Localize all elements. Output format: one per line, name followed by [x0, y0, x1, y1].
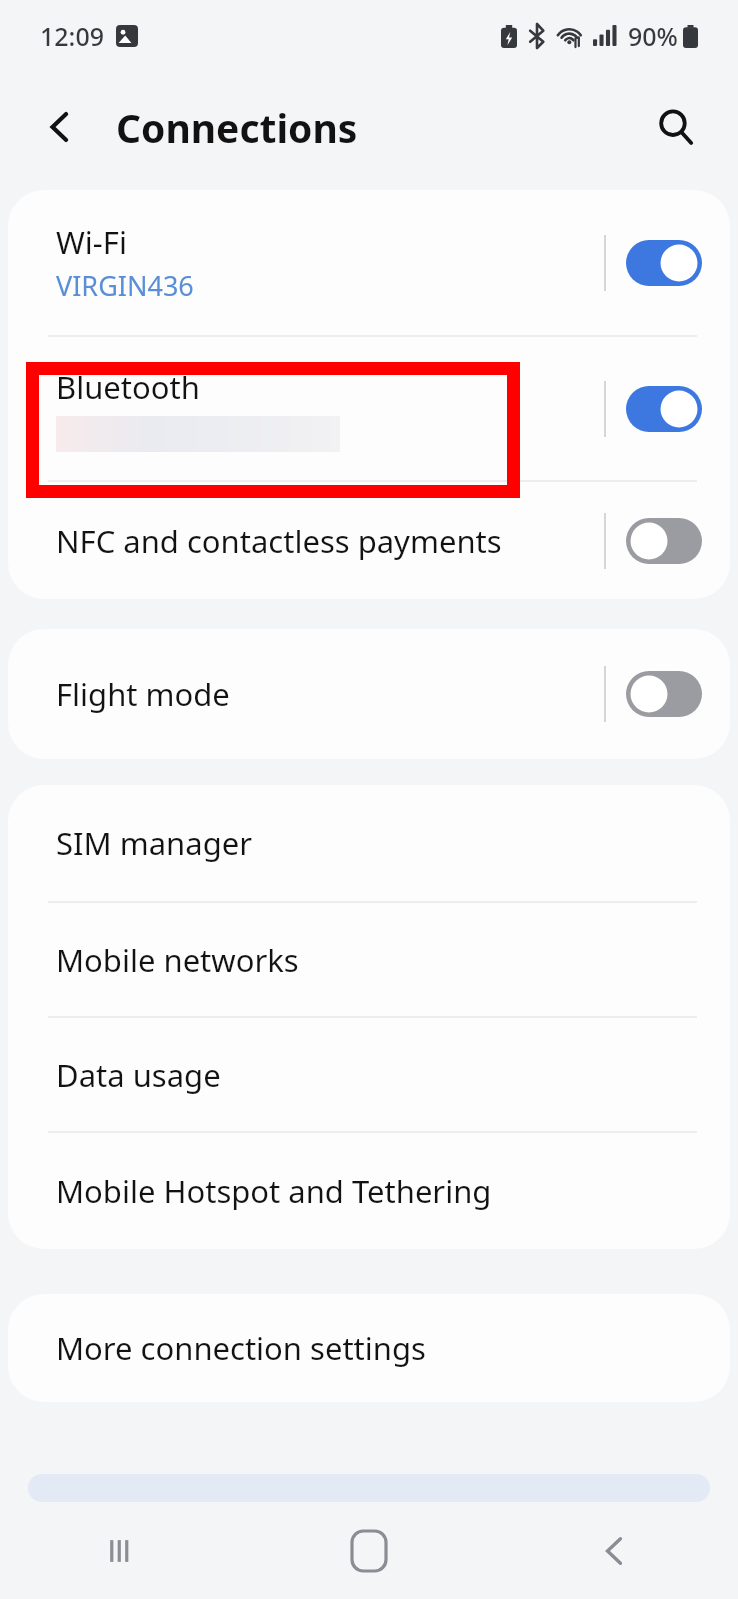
button[interactable]: Recents	[0, 1503, 246, 1599]
button[interactable]: Wi-Fi toggle	[626, 240, 702, 286]
staticText: Connections	[116, 101, 358, 154]
button[interactable]: Home	[246, 1503, 492, 1599]
button[interactable]: More connection settings	[8, 1294, 730, 1402]
button[interactable]: Back	[24, 91, 96, 163]
button[interactable]: NFC and contactless payments toggle	[626, 518, 702, 564]
button[interactable]: Mobile networks	[8, 903, 730, 1016]
staticText: VIRGIN436	[56, 267, 194, 304]
button[interactable]: SIM manager	[8, 785, 730, 901]
button[interactable]: Search	[640, 91, 712, 163]
staticText: 12:09	[40, 19, 105, 53]
button[interactable]: Flight mode toggle	[626, 671, 702, 717]
button[interactable]: Data usage	[8, 1018, 730, 1131]
staticText: SIM manager	[56, 822, 252, 864]
button[interactable]: Back	[492, 1503, 738, 1599]
staticText: NFC and contactless payments	[56, 520, 502, 562]
button[interactable]: NFC and contactless payments	[8, 482, 730, 599]
staticText: Bluetooth	[56, 366, 200, 408]
staticText: More connection settings	[56, 1327, 426, 1369]
button[interactable]: Wi-Fi	[8, 190, 730, 335]
staticText: Wi-Fi	[56, 221, 127, 263]
button[interactable]: Flight mode	[8, 629, 730, 759]
button[interactable]: Bluetooth toggle	[626, 386, 702, 432]
staticText: 90%	[628, 19, 678, 53]
staticText: Mobile Hotspot and Tethering	[56, 1170, 492, 1212]
button[interactable]: Mobile Hotspot and Tethering	[8, 1133, 730, 1249]
staticText: Mobile networks	[56, 939, 299, 981]
staticText: Flight mode	[56, 673, 230, 715]
staticText: Data usage	[56, 1054, 221, 1096]
button[interactable]: Bluetooth	[8, 337, 730, 480]
